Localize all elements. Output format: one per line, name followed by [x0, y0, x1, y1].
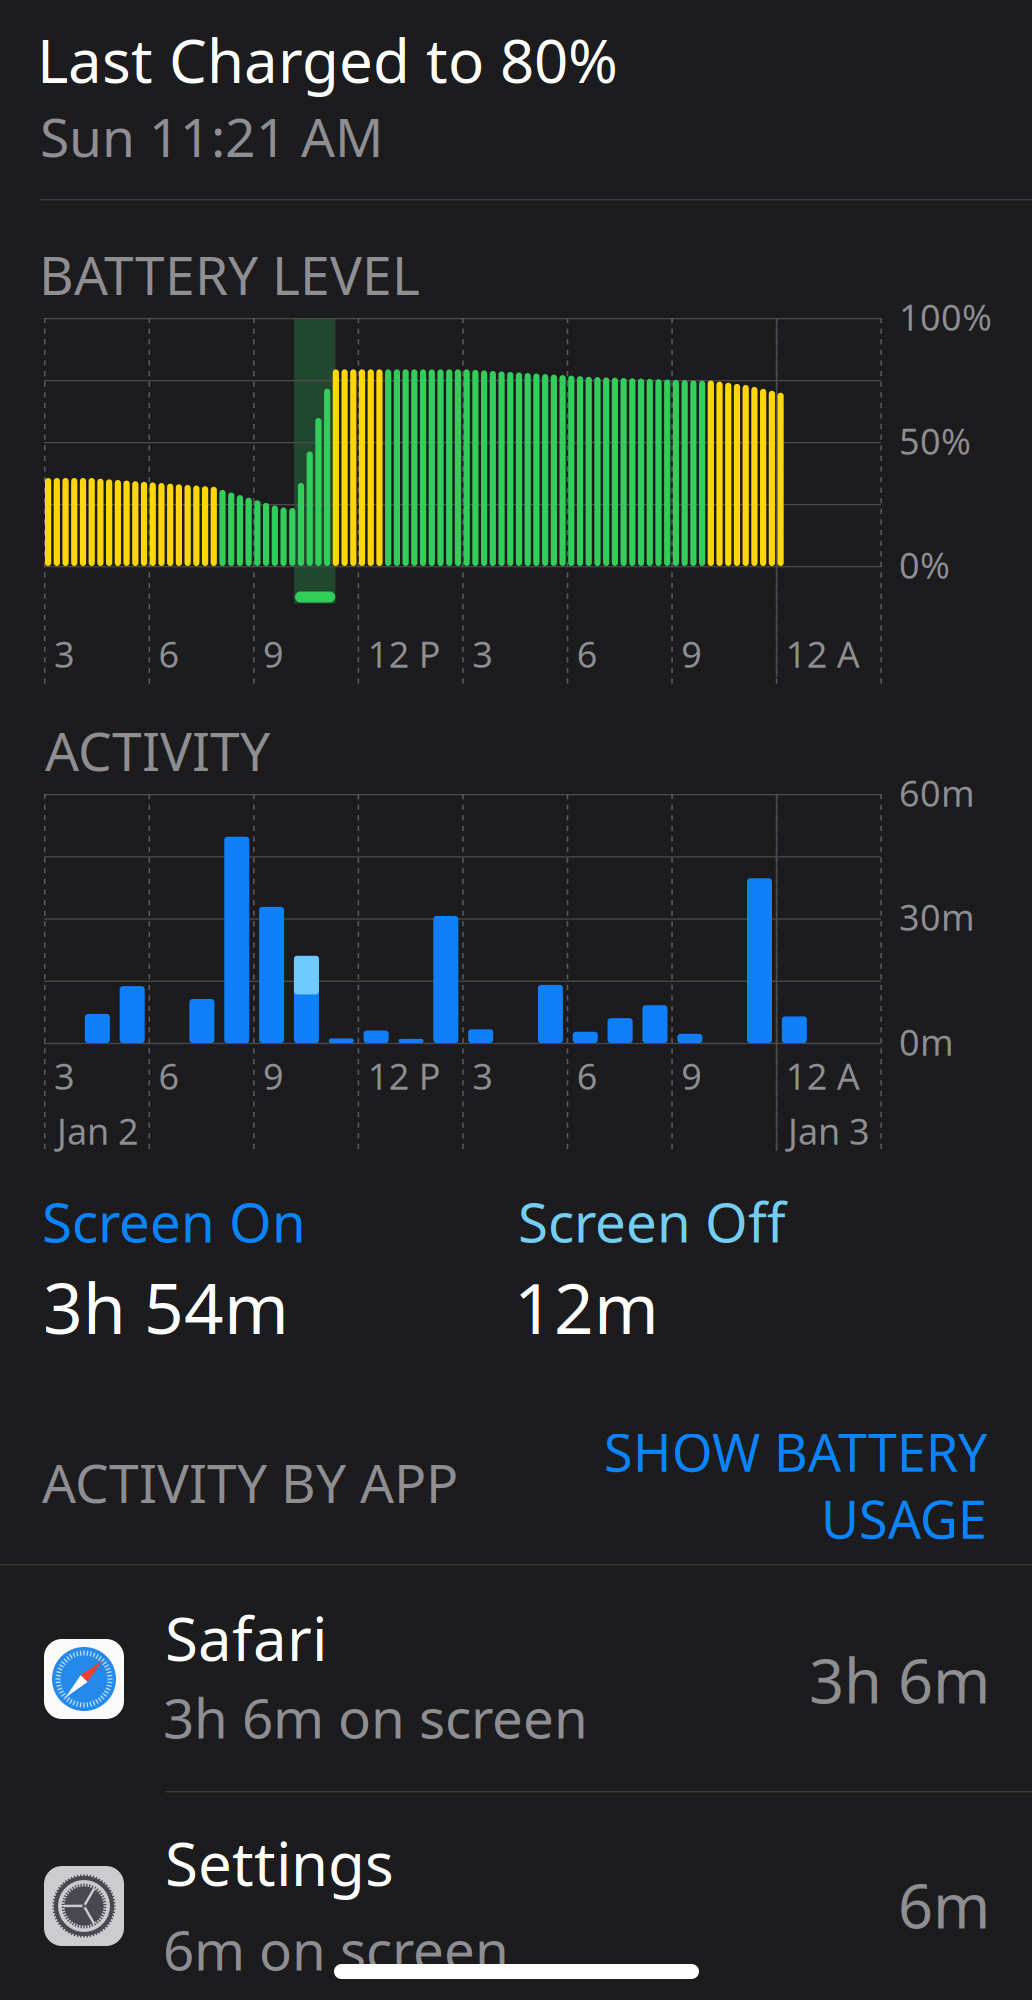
staticText: Jan 3: [788, 1107, 870, 1155]
staticText: 6: [159, 1052, 180, 1100]
staticText: 3h 6m: [809, 1639, 990, 1720]
staticText: 12 P: [368, 1052, 441, 1100]
staticText: 9: [263, 1052, 284, 1100]
staticText: Sun 11:21 AM: [40, 101, 383, 172]
staticText: 100%: [899, 293, 992, 341]
staticText: Safari: [165, 1598, 327, 1678]
staticText: 3: [472, 1052, 493, 1100]
button[interactable]: Settings: [0, 1791, 1032, 2000]
staticText: Screen On: [42, 1185, 306, 1258]
staticText: 6: [577, 1052, 598, 1100]
staticText: Settings: [165, 1823, 394, 1903]
staticText: 3: [472, 630, 493, 678]
staticText: 9: [681, 630, 702, 678]
staticText: 6: [577, 630, 598, 678]
staticText: 6: [159, 630, 180, 678]
staticText: 3: [54, 630, 75, 678]
button[interactable]: Safari: [0, 1564, 1032, 1791]
staticText: 60m: [899, 769, 975, 817]
staticText: 0m: [899, 1018, 954, 1066]
staticText: Last Charged to 80%: [37, 20, 618, 100]
staticText: 12 A: [786, 1052, 860, 1100]
staticText: Screen Off: [518, 1185, 786, 1258]
staticText: 12 A: [786, 630, 860, 678]
staticText: 50%: [899, 417, 971, 465]
staticText: 30m: [899, 893, 975, 941]
staticText: 3h 54m: [43, 1261, 289, 1353]
staticText: 3h 6m on screen: [163, 1681, 588, 1754]
staticText: 9: [681, 1052, 702, 1100]
staticText: 6m: [898, 1864, 990, 1945]
staticText: 12m: [514, 1261, 659, 1353]
button[interactable]: SHOW BATTERY: [587, 1417, 987, 1553]
staticText: SHOW BATTERY: [604, 1417, 987, 1486]
staticText: 12 P: [368, 630, 441, 678]
staticText: ACTIVITY BY APP: [42, 1447, 458, 1518]
staticText: 6m on screen: [163, 1913, 509, 1986]
staticText: 9: [263, 630, 284, 678]
staticText: Jan 2: [57, 1107, 139, 1155]
staticText: USAGE: [821, 1484, 987, 1553]
staticText: 3: [54, 1052, 75, 1100]
staticText: ACTIVITY: [45, 715, 270, 786]
staticText: 0%: [899, 541, 950, 589]
staticText: BATTERY LEVEL: [39, 239, 420, 310]
